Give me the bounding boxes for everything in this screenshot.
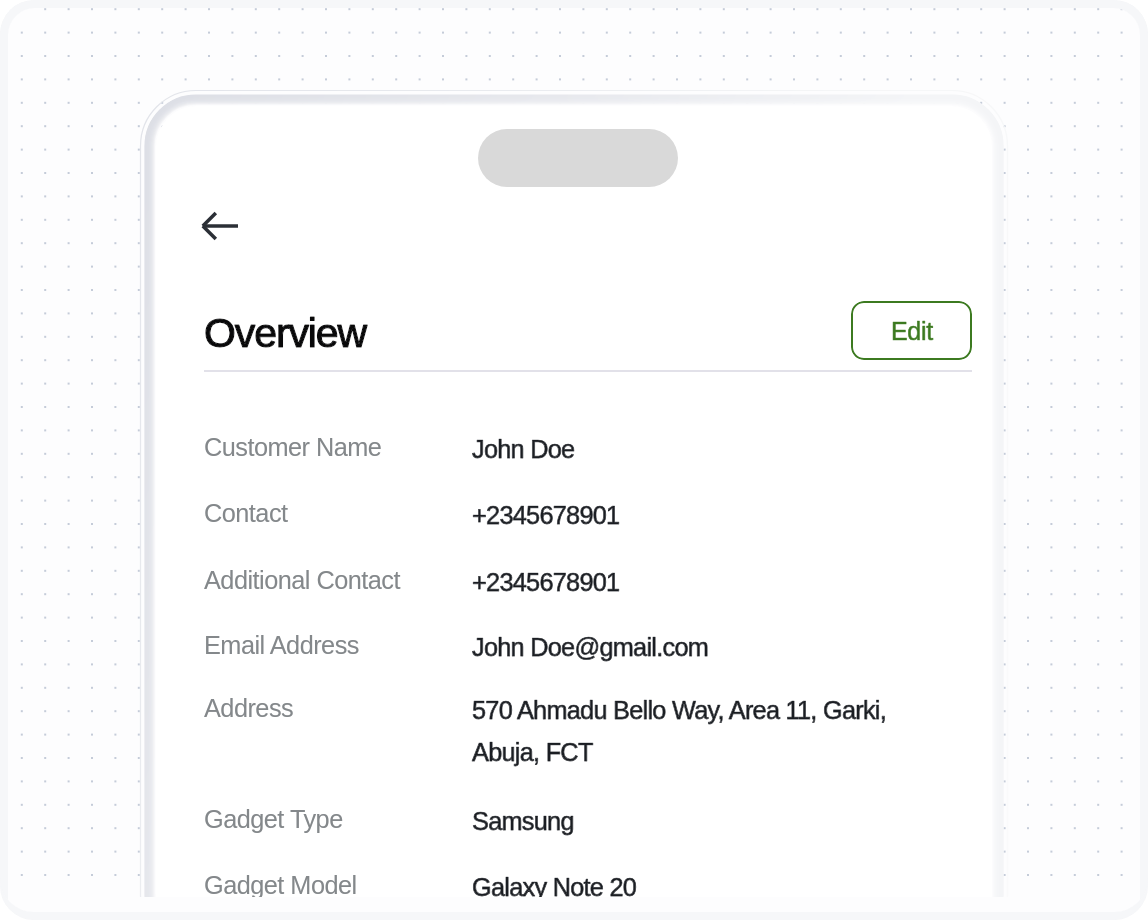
staticText: Samsung [472,807,574,835]
button[interactable]: Back [190,202,250,250]
staticText: Galaxy Note 20 [472,873,637,897]
staticText: Galaxy Note 20 [472,873,637,897]
button[interactable]: Edit [851,301,972,360]
staticText: Overview [204,310,367,356]
staticText: Gadget Type [204,805,472,833]
button[interactable]: Additional Contact [204,566,972,594]
staticText: Samsung [472,807,574,835]
staticText: John Doe [472,435,575,463]
button[interactable]: Gadget Type [204,805,972,833]
staticText: Gadget Model [204,871,472,897]
staticText: 570 Ahmadu Bello Way, Area 11, Garki, Ab… [472,696,887,766]
staticText: +2345678901 [472,568,620,596]
staticText: 570 Ahmadu Bello Way, Area 11, Garki, Ab… [472,696,887,766]
staticText: Overview [204,310,367,356]
staticText: John Doe@gmail.com [472,633,709,661]
button[interactable]: Customer Name [204,433,972,461]
staticText: Customer Name [204,433,472,461]
staticText: Additional Contact [204,566,472,594]
staticText: Contact [204,499,472,527]
staticText: +2345678901 [472,501,620,529]
staticText: John Doe [472,435,575,463]
staticText: John Doe@gmail.com [472,633,709,661]
staticText: Address [204,694,472,722]
button[interactable]: Address [204,694,972,764]
staticText: +2345678901 [472,568,620,596]
button[interactable]: Contact [204,499,972,527]
button[interactable]: Email Address [204,631,972,659]
button[interactable]: Gadget Model [204,871,972,897]
staticText: +2345678901 [472,501,620,529]
staticText: Edit [891,317,933,345]
staticText: Email Address [204,631,472,659]
staticText: Edit [891,317,933,345]
